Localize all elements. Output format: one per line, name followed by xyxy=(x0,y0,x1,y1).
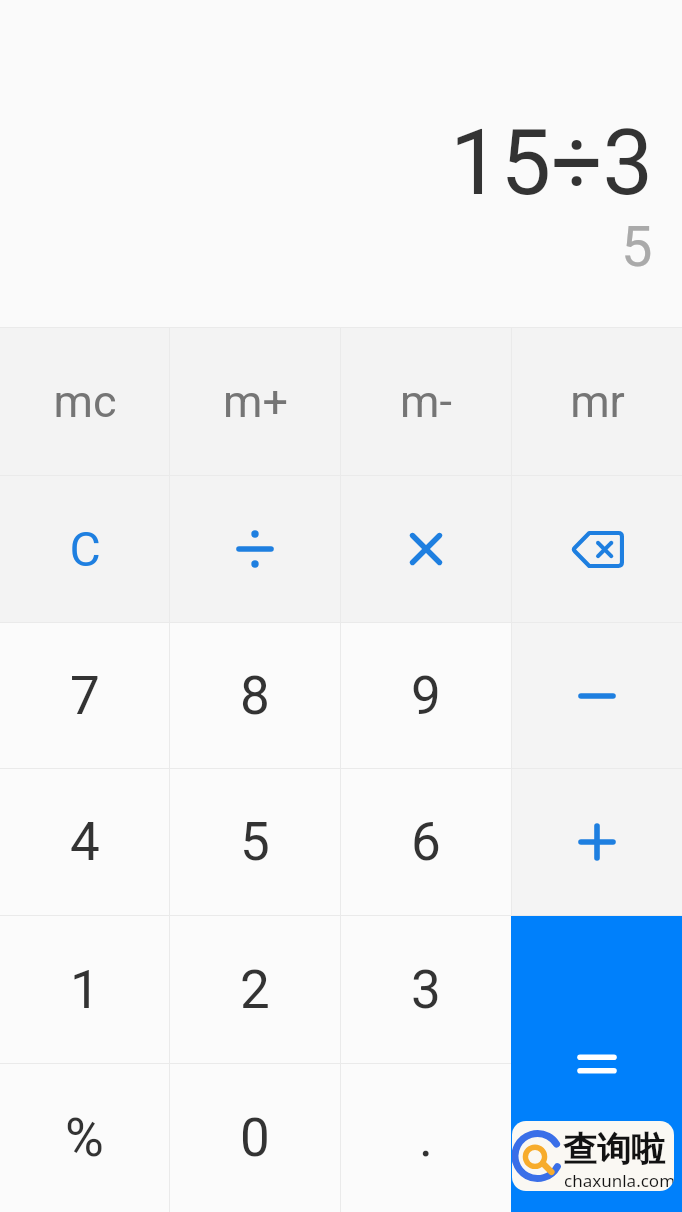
staticText: 5 xyxy=(240,811,270,873)
staticText: m+ xyxy=(223,375,288,428)
button[interactable]: Equals xyxy=(511,916,682,1212)
button[interactable]: 6 xyxy=(341,769,511,915)
button[interactable]: 4 xyxy=(0,769,169,915)
staticText: mr xyxy=(570,375,625,428)
staticText: 6 xyxy=(411,811,441,873)
button[interactable]: 1 xyxy=(0,916,169,1063)
staticText: 8 xyxy=(240,665,270,727)
button[interactable]: 8 xyxy=(170,623,340,768)
staticText: 9 xyxy=(411,665,441,727)
button[interactable]: . xyxy=(341,1064,511,1212)
button[interactable]: 7 xyxy=(0,623,169,768)
staticText: mc xyxy=(53,375,117,428)
button[interactable]: Multiply xyxy=(341,476,511,622)
button[interactable]: 3 xyxy=(341,916,511,1063)
button[interactable]: 9 xyxy=(341,623,511,768)
button[interactable]: Minus xyxy=(512,623,682,768)
button[interactable]: m- xyxy=(341,328,511,475)
staticText: 2 xyxy=(240,959,270,1021)
staticText: 4 xyxy=(70,811,100,873)
staticText: m- xyxy=(400,375,452,428)
staticText: 1 xyxy=(70,959,100,1021)
button[interactable]: 2 xyxy=(170,916,340,1063)
button[interactable]: mc xyxy=(0,328,169,475)
staticText: . xyxy=(419,1107,433,1169)
button[interactable]: Divide xyxy=(170,476,340,622)
button[interactable]: mr xyxy=(512,328,682,475)
button[interactable]: 0 xyxy=(170,1064,340,1212)
button[interactable]: % xyxy=(0,1064,169,1212)
staticText: 查询啦 xyxy=(563,1128,665,1171)
staticText: 15÷3 xyxy=(450,111,654,216)
staticText: % xyxy=(65,1107,104,1169)
staticText: C xyxy=(69,521,101,577)
staticText: 7 xyxy=(70,665,100,727)
button[interactable]: Backspace xyxy=(512,476,682,622)
button[interactable]: Clear xyxy=(0,476,169,622)
button[interactable]: 5 xyxy=(170,769,340,915)
staticText: chaxunla.com xyxy=(564,1169,674,1191)
button[interactable]: Plus xyxy=(512,769,682,915)
staticText: 0 xyxy=(240,1107,270,1169)
button[interactable]: m+ xyxy=(170,328,340,475)
staticText: 5 xyxy=(621,214,653,280)
staticText: 3 xyxy=(411,959,441,1021)
